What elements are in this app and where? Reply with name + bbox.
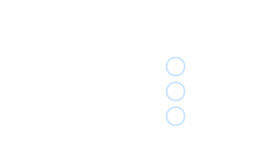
button[interactable]: Option 3 bbox=[166, 106, 186, 126]
button[interactable]: Option 2 bbox=[166, 81, 186, 101]
button[interactable]: Option 1 bbox=[166, 57, 186, 77]
